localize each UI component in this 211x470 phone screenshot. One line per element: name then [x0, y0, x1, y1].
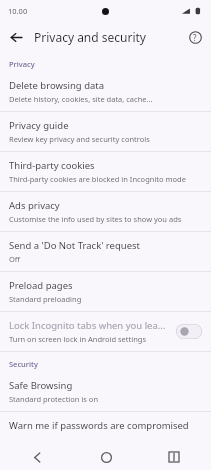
button[interactable]: Safe Browsing [0, 372, 211, 411]
button[interactable]: Warn me if passwords are compromised [0, 412, 211, 439]
staticText: Turn on screen lock in Android settings [9, 334, 147, 344]
staticText: Off [9, 254, 21, 264]
staticText: Privacy [9, 59, 35, 69]
button[interactable]: Lock Incognito tabs when you leave Chrom… [0, 312, 211, 351]
staticText: Customise the info used by sites to show… [9, 214, 182, 224]
button[interactable]: Back [28, 448, 46, 466]
button[interactable]: Help [187, 29, 211, 45]
button[interactable]: Privacy guide [0, 112, 211, 151]
staticText: Security [9, 359, 38, 369]
button[interactable]: Recent apps [165, 448, 183, 466]
staticText: Standard protection is on [9, 394, 99, 404]
staticText: ? [193, 32, 197, 43]
staticText: Delete history, cookies, site data, cach… [9, 94, 153, 104]
staticText: Ads privacy [9, 199, 60, 212]
button[interactable]: Preload pages [0, 272, 211, 311]
staticText: Privacy guide [9, 119, 69, 132]
staticText: Review key privacy and security controls [9, 134, 150, 144]
staticText: Standard preloading [9, 294, 82, 304]
staticText: Third-party cookies [9, 159, 95, 172]
staticText: Safe Browsing [9, 379, 73, 392]
staticText: Send a 'Do Not Track' request [9, 239, 140, 252]
staticText: Warn me if passwords are compromised [9, 419, 189, 432]
button[interactable]: Ads privacy [0, 192, 211, 231]
staticText: Preload pages [9, 279, 73, 292]
button[interactable]: Send a 'Do Not Track' request [0, 232, 211, 271]
button[interactable]: Third-party cookies [0, 152, 211, 191]
staticText: Privacy and security [34, 29, 187, 45]
staticText: Third-party cookies are blocked in Incog… [9, 174, 186, 184]
button[interactable]: Lock Incognito tabs toggle [176, 324, 202, 339]
button[interactable]: Home [97, 448, 115, 466]
staticText: Lock Incognito tabs when you leave Chrom… [9, 319, 170, 332]
button[interactable]: Delete browsing data [0, 72, 211, 111]
staticText: Delete browsing data [9, 79, 105, 92]
button[interactable]: Back [0, 29, 28, 45]
staticText: 10.00 [8, 6, 28, 16]
